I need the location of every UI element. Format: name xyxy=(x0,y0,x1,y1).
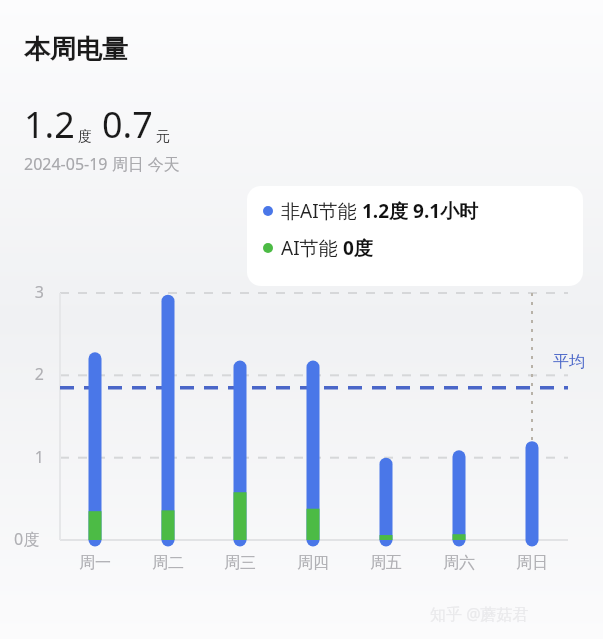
staticText: 2 xyxy=(22,363,44,385)
staticText: 0度 xyxy=(343,235,373,261)
staticText: 1.2 xyxy=(24,100,75,149)
staticText: 1 xyxy=(22,446,44,468)
button[interactable]: 周三 xyxy=(216,553,264,573)
staticText: 周日 xyxy=(508,553,556,573)
staticText: 元 xyxy=(156,128,170,146)
staticText: 周四 xyxy=(289,553,337,573)
staticText: 周三 xyxy=(216,553,264,573)
staticText: 周一 xyxy=(71,553,119,573)
staticText: 平均 xyxy=(553,352,585,372)
button[interactable]: 周二 xyxy=(144,553,192,573)
staticText: 度 xyxy=(78,128,92,146)
button[interactable]: 非AI节能 xyxy=(247,186,583,286)
staticText: 1.2度 9.1小时 xyxy=(362,198,479,224)
button[interactable]: 周一 xyxy=(71,553,119,573)
staticText: 2024-05-19 周日 今天 xyxy=(24,153,180,175)
button[interactable]: 周日 xyxy=(508,553,556,573)
staticText: 3 xyxy=(22,281,44,303)
staticText: 知乎 @蘑菇君 xyxy=(430,603,529,625)
button[interactable]: 周四 xyxy=(289,553,337,573)
staticText: 周五 xyxy=(362,553,410,573)
staticText: 非AI节能 xyxy=(281,198,362,224)
staticText: 周六 xyxy=(435,553,483,573)
staticText: AI节能 xyxy=(281,235,343,261)
button[interactable]: 周六 xyxy=(435,553,483,573)
staticText: 周二 xyxy=(144,553,192,573)
staticText: 0.7 xyxy=(102,100,153,149)
button[interactable]: 周五 xyxy=(362,553,410,573)
staticText: 0度 xyxy=(14,528,40,550)
staticText: 本周电量 xyxy=(24,33,128,66)
